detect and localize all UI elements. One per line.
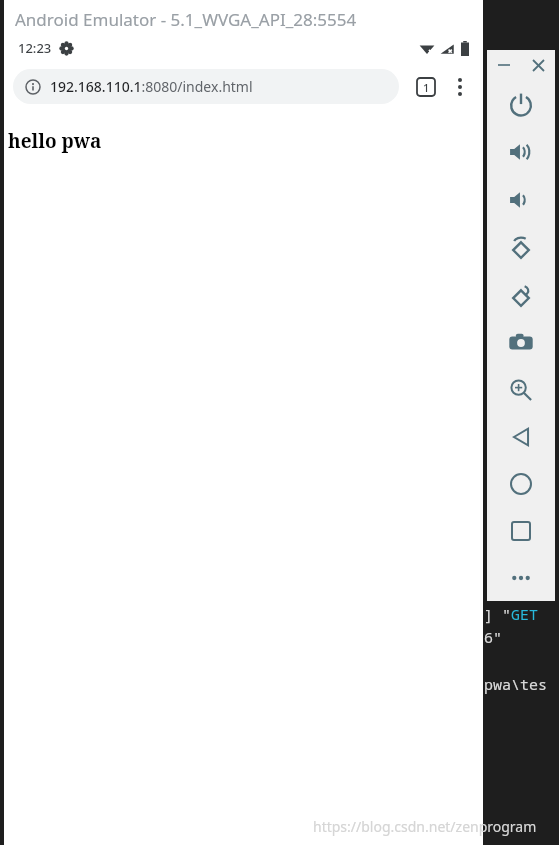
button[interactable]: Take screenshot (487, 319, 555, 366)
button[interactable]: Close (521, 50, 555, 80)
button[interactable]: 192.168.110.1:8080/index.html (13, 69, 399, 104)
button[interactable]: Zoom (487, 366, 555, 413)
button[interactable]: Volume down (487, 176, 555, 224)
staticText: hello pwa (8, 128, 102, 154)
button[interactable]: Power (487, 80, 555, 128)
staticText: 1 (423, 80, 430, 95)
button[interactable]: Back (487, 413, 555, 460)
button[interactable]: Rotate right (487, 272, 555, 319)
button[interactable]: Home (487, 460, 555, 507)
button[interactable]: Volume up (487, 128, 555, 176)
staticText: Android Emulator - 5.1_WVGA_API_28:5554 (15, 8, 357, 31)
staticText: 192.168.110.1:8080/index.html (50, 77, 253, 96)
staticText: ] "GET (484, 604, 539, 624)
button[interactable]: More (487, 554, 555, 601)
staticText: 12:23 (18, 39, 52, 57)
button[interactable]: Tabs, 1 open (409, 70, 443, 104)
button[interactable]: More options (443, 70, 477, 104)
button[interactable]: Minimize (487, 50, 521, 80)
button[interactable]: Overview (487, 507, 555, 554)
staticText: 6" (484, 627, 503, 647)
staticText: https://blog.csdn.net/zenprogram (313, 817, 537, 836)
staticText: pwa\tes (484, 674, 548, 694)
button[interactable]: Rotate left (487, 224, 555, 272)
